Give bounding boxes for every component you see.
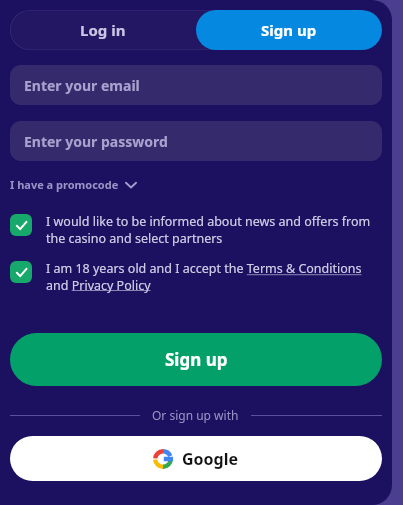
button[interactable]: Enter your email xyxy=(10,65,382,105)
staticText: I am 18 years old and I accept the Terms… xyxy=(46,260,382,293)
staticText: Or sign up with xyxy=(152,407,239,423)
staticText: Enter your password xyxy=(24,132,168,151)
staticText: Enter your email xyxy=(24,76,140,95)
staticText: Log in xyxy=(80,20,126,40)
button[interactable]: Log in xyxy=(10,10,196,50)
staticText: Sign up xyxy=(165,348,228,371)
other: Google xyxy=(153,449,173,469)
button[interactable]: I am 18 years old and I accept the Terms… xyxy=(10,261,382,294)
button[interactable]: Google xyxy=(10,436,382,481)
button[interactable]: I would like to be informed about news a… xyxy=(10,214,382,247)
button[interactable]: Sign up xyxy=(10,333,382,386)
staticText: I would like to be informed about news a… xyxy=(46,213,382,246)
staticText: I have a promocode xyxy=(10,177,119,192)
button[interactable]: I have a promocode xyxy=(10,175,137,194)
button[interactable]: Sign up xyxy=(196,10,382,50)
staticText: Sign up xyxy=(261,20,317,40)
button[interactable]: Enter your password xyxy=(10,121,382,161)
staticText: Google xyxy=(182,448,239,470)
